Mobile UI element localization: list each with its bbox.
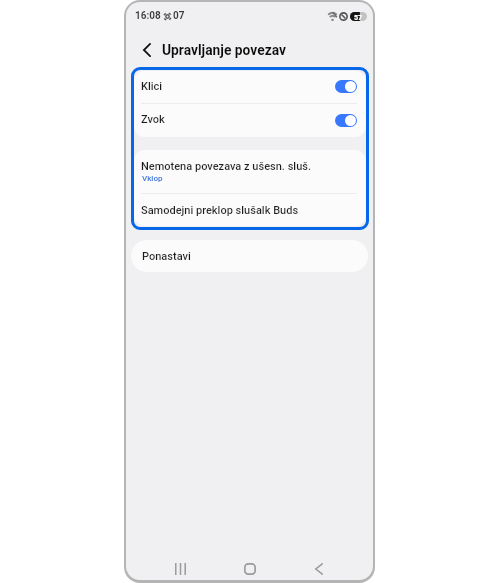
staticText: Ponastavi [142, 250, 191, 263]
button[interactable]: Klici [134, 71, 366, 103]
staticText: Nemotena povezava z ušesn. sluš. [141, 160, 312, 173]
button[interactable]: Recent apps [168, 557, 192, 580]
button[interactable]: Samodejni preklop slušalk Buds [134, 194, 366, 226]
button[interactable]: Back [307, 557, 331, 580]
staticText: Vklop [142, 174, 163, 183]
staticText: 07 [173, 10, 185, 22]
button[interactable]: Zvok [134, 104, 366, 137]
button[interactable]: Nemotena povezava z ušesn. sluš. [134, 150, 366, 193]
button[interactable]: Back [134, 37, 159, 62]
staticText: 16:08 [135, 10, 161, 22]
button[interactable]: Home [238, 557, 262, 580]
button[interactable]: Ponastavi [131, 240, 368, 272]
staticText: Upravljanje povezav [162, 42, 286, 58]
staticText: Samodejni preklop slušalk Buds [141, 204, 299, 217]
staticText: 57 [354, 13, 363, 21]
staticText: Zvok [141, 113, 165, 126]
staticText: Klici [141, 80, 163, 93]
